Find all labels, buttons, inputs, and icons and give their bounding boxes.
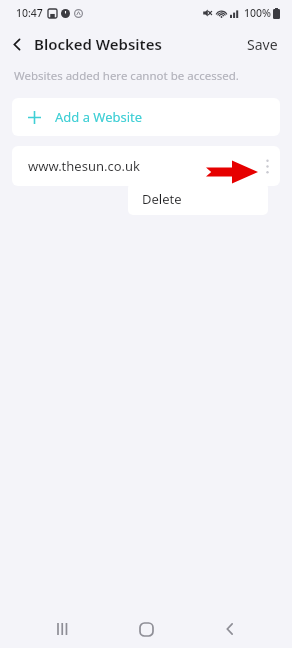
button[interactable]: Recents: [40, 610, 84, 648]
button[interactable]: www.thesun.co.uk: [12, 146, 280, 186]
staticText: Blocked Websites: [34, 34, 162, 54]
button[interactable]: Back: [0, 27, 34, 61]
button[interactable]: Delete: [128, 183, 268, 215]
staticText: 100%: [244, 6, 271, 20]
staticText: 10:47: [16, 6, 43, 20]
button[interactable]: Home: [124, 610, 168, 648]
button[interactable]: More options: [254, 146, 280, 186]
staticText: Save: [247, 35, 278, 54]
staticText: www.thesun.co.uk: [28, 157, 141, 175]
staticText: Delete: [142, 190, 182, 208]
staticText: Websites added here cannot be accessed.: [14, 68, 239, 84]
button[interactable]: Back: [208, 610, 252, 648]
staticText: Add a Website: [55, 108, 143, 126]
button[interactable]: Save: [233, 29, 292, 60]
button[interactable]: Add a Website: [12, 98, 280, 136]
